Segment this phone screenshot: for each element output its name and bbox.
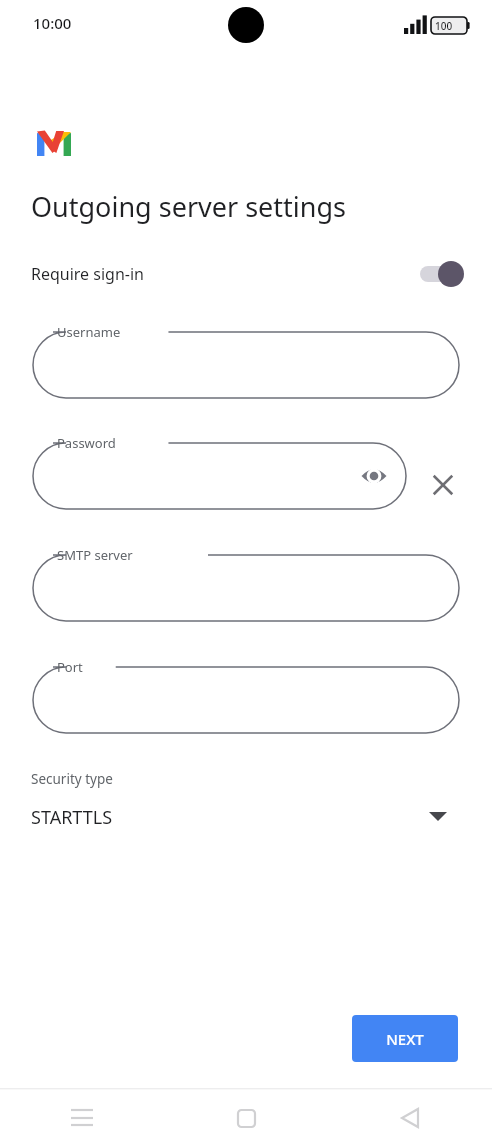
button[interactable]: Username	[33, 332, 459, 398]
staticText: STARTTLS	[31, 805, 113, 830]
staticText: Port	[57, 658, 83, 676]
staticText: 10:00	[33, 13, 72, 33]
button[interactable]: Recents	[0, 1088, 164, 1148]
staticText: SMTP server	[57, 546, 133, 564]
button[interactable]: Port	[33, 667, 459, 733]
staticText: Outgoing server settings	[31, 188, 347, 225]
staticText: Username	[57, 323, 121, 341]
button[interactable]: Show password	[356, 458, 392, 494]
button[interactable]: Require sign-in	[0, 250, 492, 298]
button[interactable]: Home	[164, 1088, 328, 1148]
staticText: Password	[57, 434, 116, 452]
staticText: NEXT	[386, 1029, 424, 1049]
button[interactable]: Password	[33, 443, 406, 509]
staticText: 100	[435, 19, 453, 33]
button[interactable]: Security type	[0, 760, 492, 842]
staticText: Security type	[31, 770, 113, 788]
button[interactable]: SMTP server	[33, 555, 459, 621]
other: Select security type	[420, 798, 456, 834]
staticText: Require sign-in	[31, 263, 144, 285]
button[interactable]: NEXT	[352, 1015, 458, 1062]
button[interactable]: Clear password	[423, 465, 463, 505]
button[interactable]: Back	[328, 1088, 492, 1148]
